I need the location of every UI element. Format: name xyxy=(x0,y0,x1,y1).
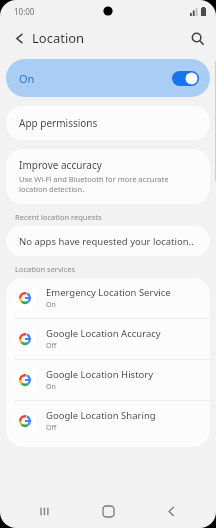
button[interactable]: No apps have requested your location.. xyxy=(6,226,210,256)
button[interactable]: Google Location History xyxy=(6,360,210,400)
staticText: Off xyxy=(46,423,57,433)
staticText: Google Location Sharing xyxy=(46,409,156,422)
staticText: Off xyxy=(46,341,57,351)
staticText: Emergency Location Service xyxy=(46,286,171,299)
button[interactable]: Recent apps xyxy=(27,494,63,528)
staticText: Recent location requests xyxy=(15,212,102,222)
button[interactable]: Back xyxy=(153,494,189,528)
staticText: Improve accuracy xyxy=(19,158,102,172)
staticText: 10:00 xyxy=(14,6,35,17)
staticText: Google Location History xyxy=(46,368,154,381)
button[interactable]: Back xyxy=(6,25,32,51)
staticText: Location services xyxy=(15,264,76,274)
staticText: No apps have requested your location.. xyxy=(19,235,194,248)
staticText: On xyxy=(19,71,35,86)
button[interactable]: App permissions xyxy=(6,106,210,140)
button[interactable]: Google Location Sharing xyxy=(6,401,210,441)
staticText: Location xyxy=(32,29,85,47)
staticText: On xyxy=(46,300,56,310)
button[interactable]: Home xyxy=(90,494,126,528)
staticText: Use Wi-Fi and Bluetooth for more accurat… xyxy=(19,174,197,194)
staticText: On xyxy=(46,382,56,392)
staticText: Google Location Accuracy xyxy=(46,327,161,340)
button[interactable]: On xyxy=(6,59,210,97)
button[interactable]: Search xyxy=(184,25,210,51)
button[interactable]: Improve accuracy xyxy=(6,149,210,204)
staticText: App permissions xyxy=(19,116,98,130)
button[interactable]: Emergency Location Service xyxy=(6,278,210,318)
button[interactable]: Google Location Accuracy xyxy=(6,319,210,359)
